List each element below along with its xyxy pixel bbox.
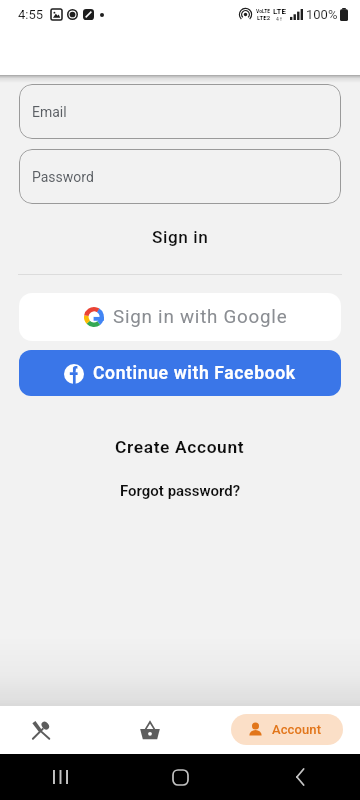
button[interactable]: Home xyxy=(120,754,240,800)
staticText: Password xyxy=(32,169,94,185)
staticText: Sign in xyxy=(152,227,209,247)
button[interactable]: Forgot password? xyxy=(0,476,360,506)
button[interactable]: Sign in with Google xyxy=(19,293,341,341)
staticText: LTE2 xyxy=(257,14,271,21)
button[interactable]: Account xyxy=(231,714,343,745)
staticText: 100% xyxy=(306,7,338,22)
staticText: 4↑ xyxy=(276,16,283,22)
button[interactable]: Sign in xyxy=(0,214,360,259)
button[interactable]: Restaurants xyxy=(20,706,62,754)
button[interactable]: Recent apps xyxy=(0,754,120,800)
staticText: Forgot password? xyxy=(120,482,241,500)
button[interactable]: Create Account xyxy=(0,428,360,466)
button[interactable]: Basket xyxy=(129,706,171,754)
button[interactable]: Back xyxy=(240,754,360,800)
staticText: Create Account xyxy=(115,437,245,457)
button[interactable]: Password xyxy=(19,149,341,204)
staticText: VoLTE xyxy=(256,8,271,14)
staticText: Email xyxy=(32,104,67,120)
staticText: Continue with Facebook xyxy=(93,363,296,384)
staticText: 4:55 xyxy=(18,7,44,22)
button[interactable]: Email xyxy=(19,84,341,139)
button[interactable]: Continue with Facebook xyxy=(19,350,341,396)
staticText: Sign in with Google xyxy=(113,306,288,328)
staticText: Account xyxy=(272,722,322,737)
staticText: LTE xyxy=(273,7,286,16)
